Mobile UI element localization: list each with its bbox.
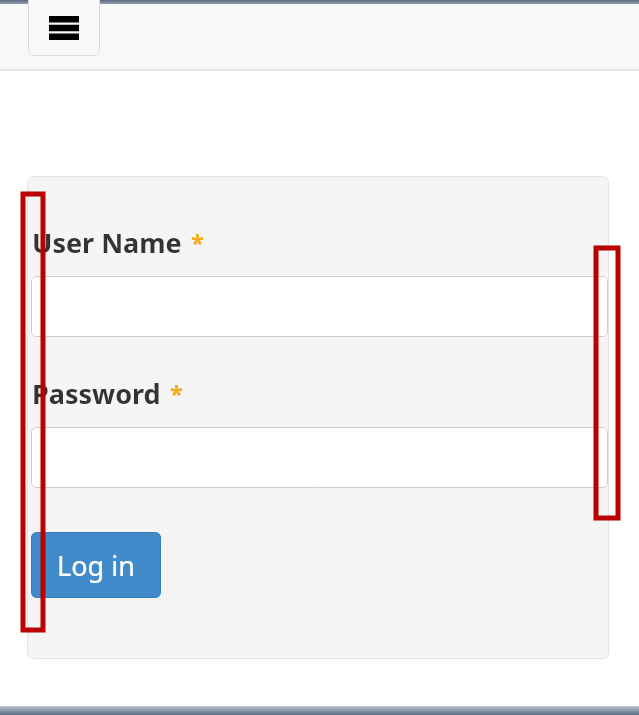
button[interactable]: Password input field: [31, 427, 608, 488]
button[interactable]: Toggle navigation menu: [28, 0, 100, 56]
staticText: *: [170, 377, 184, 410]
staticText: Log in: [57, 547, 135, 584]
staticText: Password: [32, 375, 161, 412]
button[interactable]: Log in: [31, 532, 161, 598]
staticText: *: [191, 226, 205, 259]
staticText: User Name: [32, 224, 182, 261]
button[interactable]: User Name input field: [31, 276, 608, 337]
